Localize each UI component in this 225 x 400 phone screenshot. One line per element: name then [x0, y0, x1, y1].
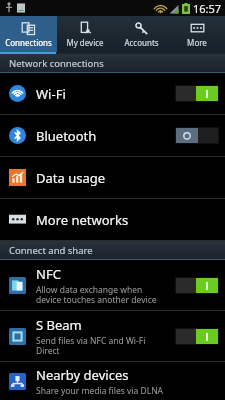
staticText: Allow data exchange when device touches … — [36, 284, 165, 305]
button[interactable]: Bluetooth toggle — [175, 127, 219, 144]
staticText: Data usage — [36, 169, 106, 187]
staticText: Wi-Fi — [36, 85, 66, 103]
button[interactable]: Bluetooth — [0, 115, 225, 156]
button[interactable]: Wi-Fi toggle — [175, 85, 219, 102]
button[interactable]: My device — [57, 16, 113, 52]
button[interactable]: NFC toggle — [175, 277, 219, 294]
staticText: NFC — [36, 265, 61, 283]
button[interactable]: Accounts — [113, 16, 169, 52]
staticText: Connect and share — [9, 244, 93, 257]
staticText: Network connections — [9, 57, 104, 70]
button[interactable]: Nearby devices — [0, 362, 225, 400]
staticText: Nearby devices — [36, 366, 129, 384]
staticText: Send files via NFC and Wi-Fi Direct — [36, 335, 165, 356]
button[interactable]: Data usage — [0, 157, 225, 198]
staticText: More — [187, 37, 207, 48]
staticText: More networks — [36, 211, 129, 229]
button[interactable]: S Beam toggle — [175, 328, 219, 345]
staticText: S Beam — [36, 316, 82, 334]
button[interactable]: S Beam — [0, 311, 225, 361]
staticText: Accounts — [124, 37, 159, 48]
button[interactable]: NFC — [0, 260, 225, 310]
staticText: 16:57 — [193, 1, 222, 16]
staticText: Share your media files via DLNA — [36, 385, 164, 397]
button[interactable]: More — [169, 16, 225, 52]
button[interactable]: Wi-Fi — [0, 73, 225, 114]
staticText: My device — [66, 37, 104, 48]
button[interactable]: Connections — [0, 16, 57, 52]
staticText: Connections — [5, 37, 52, 48]
button[interactable]: More networks — [0, 199, 225, 240]
staticText: Bluetooth — [36, 127, 97, 145]
